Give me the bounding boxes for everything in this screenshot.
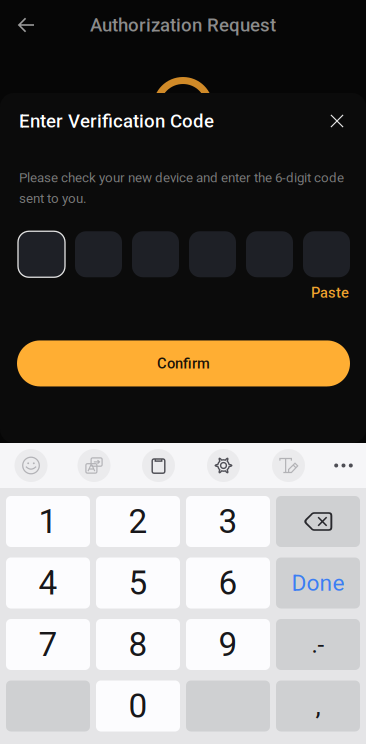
button[interactable]: 4	[6, 557, 90, 608]
button[interactable]: 3	[186, 496, 270, 547]
button[interactable]: Emoji	[9, 445, 53, 485]
staticText: 3	[218, 502, 237, 541]
staticText: 6	[218, 563, 237, 603]
button[interactable]: Digit field	[189, 231, 236, 277]
staticText: 2	[128, 502, 147, 541]
button[interactable]: Close	[321, 105, 353, 137]
staticText: 1	[38, 502, 57, 541]
button[interactable]: 7	[6, 619, 90, 670]
button[interactable]: 2	[96, 496, 180, 547]
button[interactable]: Done	[276, 557, 360, 608]
button[interactable]: Paste	[311, 282, 349, 303]
button[interactable]: Digit field	[75, 231, 122, 277]
button[interactable]: Delete	[276, 496, 360, 547]
staticText: .-	[311, 630, 324, 658]
staticText: Paste	[311, 284, 349, 301]
button[interactable]: Back	[4, 3, 48, 47]
button[interactable]: Clipboard	[136, 445, 180, 485]
button[interactable]: 5	[96, 557, 180, 608]
staticText: Please check your new device and enter t…	[19, 170, 344, 206]
button[interactable]: Digit field	[303, 231, 350, 277]
button[interactable]: Translate	[72, 445, 116, 485]
staticText: ,	[315, 690, 320, 722]
staticText: 7	[38, 625, 57, 664]
button[interactable]: ,	[276, 680, 360, 731]
staticText: Confirm	[157, 355, 210, 372]
staticText: Done	[291, 570, 344, 596]
staticText: 0	[128, 686, 147, 726]
button[interactable]: Digit field	[132, 231, 179, 277]
button[interactable]: Digit field	[246, 231, 293, 277]
button[interactable]: 0	[96, 680, 180, 731]
button[interactable]: Confirm	[17, 340, 350, 386]
staticText: Enter Verification Code	[19, 110, 214, 132]
staticText: Authorization Request	[90, 14, 276, 36]
button[interactable]: 1	[6, 496, 90, 547]
staticText: 8	[128, 625, 147, 664]
button[interactable]: More	[321, 445, 365, 485]
staticText: 4	[38, 563, 57, 603]
button[interactable]: Settings	[201, 445, 245, 485]
button[interactable]: Text tools	[266, 445, 310, 485]
staticText: 9	[218, 625, 237, 664]
button[interactable]: .-	[276, 619, 360, 670]
button[interactable]: Digit field	[18, 231, 65, 277]
staticText: 5	[128, 563, 147, 603]
button[interactable]: 6	[186, 557, 270, 608]
button[interactable]: 9	[186, 619, 270, 670]
button[interactable]: 8	[96, 619, 180, 670]
